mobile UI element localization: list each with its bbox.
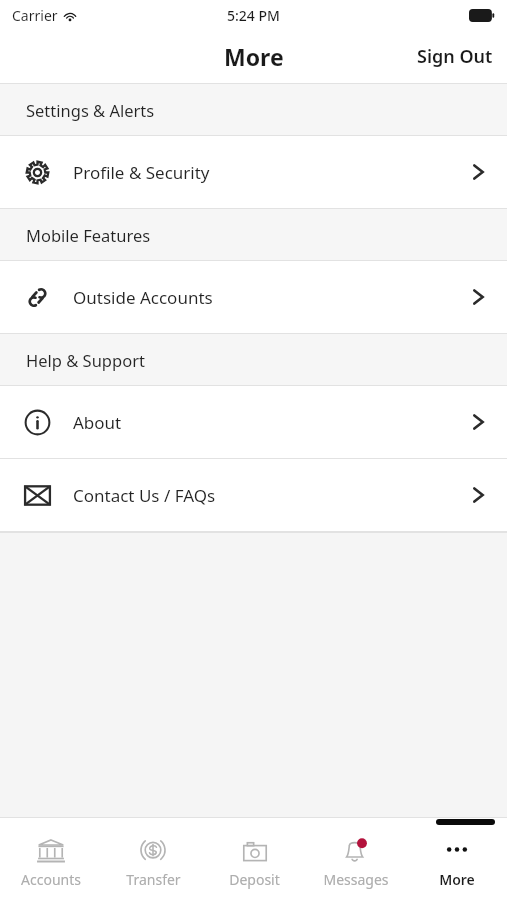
staticText: More (224, 41, 284, 72)
staticText: Deposit (229, 870, 280, 889)
button[interactable]: Profile & Security (0, 136, 507, 208)
button[interactable]: Deposit (204, 829, 305, 889)
staticText: Outside Accounts (73, 286, 472, 309)
staticText: Accounts (21, 870, 81, 889)
button[interactable]: Contact Us / FAQs (0, 459, 507, 531)
button[interactable]: Sign Out (403, 36, 507, 77)
button[interactable]: Messages (305, 829, 406, 889)
staticText: Mobile Features (26, 224, 151, 246)
staticText: 5:24 PM (227, 6, 280, 25)
button[interactable]: About (0, 386, 507, 458)
button[interactable]: More (406, 829, 507, 889)
staticText: Sign Out (417, 44, 493, 69)
staticText: Transfer (126, 870, 181, 889)
staticText: More (439, 870, 475, 889)
staticText: Help & Support (26, 349, 145, 371)
button[interactable]: Outside Accounts (0, 261, 507, 333)
staticText: Profile & Security (73, 161, 472, 184)
staticText: Contact Us / FAQs (73, 484, 472, 507)
staticText: About (73, 411, 472, 434)
button[interactable]: Accounts (0, 829, 102, 889)
button[interactable]: Transfer (102, 829, 204, 889)
staticText: Settings & Alerts (26, 99, 155, 121)
staticText: Messages (323, 870, 389, 889)
staticText: Carrier (12, 6, 58, 25)
